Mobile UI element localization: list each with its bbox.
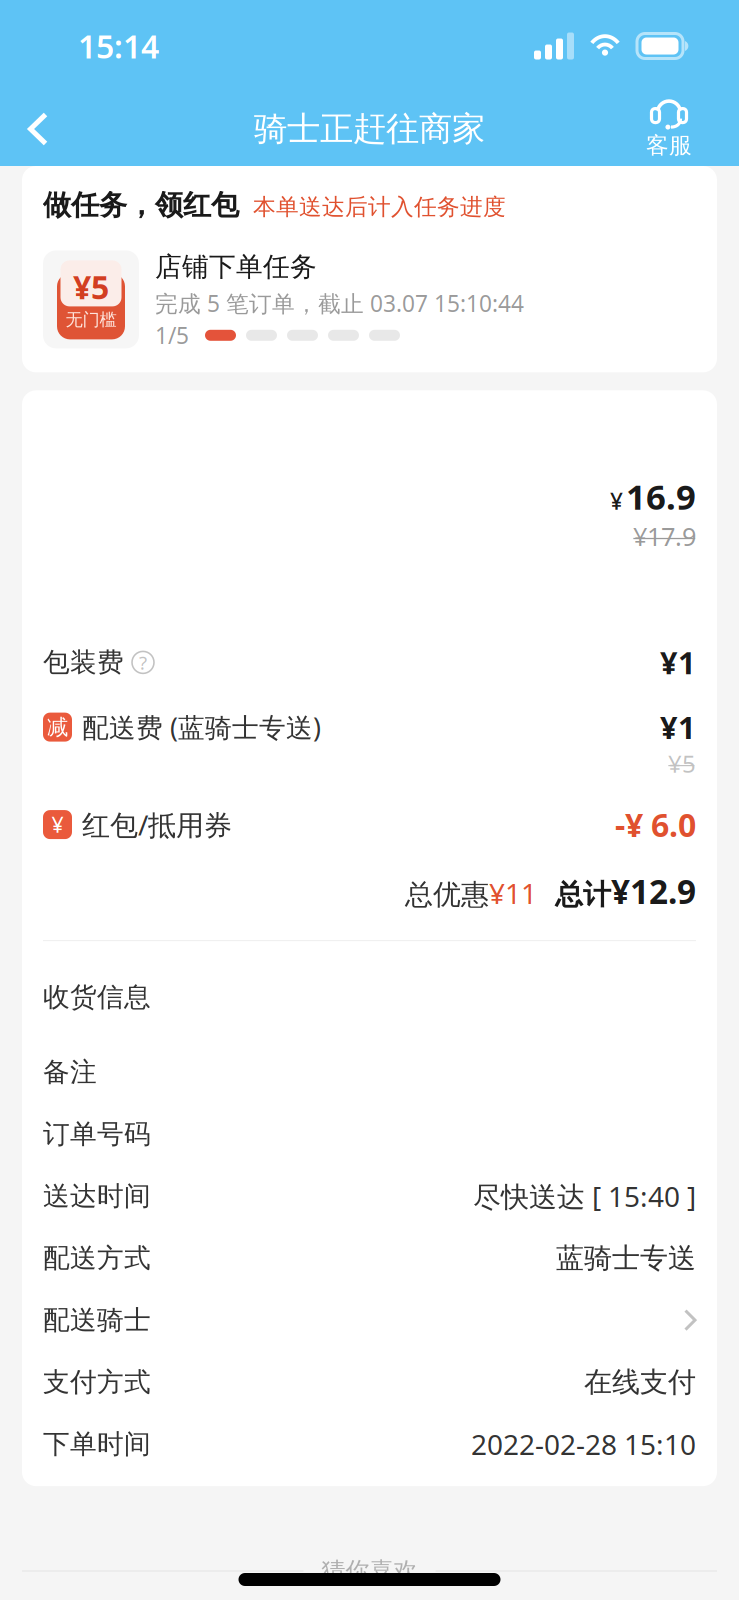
staticText: 16.9: [626, 473, 696, 519]
button[interactable]: 配送骑士: [22, 1289, 717, 1351]
staticText: ¥12.9: [611, 869, 696, 913]
staticText: ¥17.9: [633, 519, 696, 553]
staticText: 猜你喜欢: [321, 1556, 417, 1586]
staticText: ?: [139, 650, 147, 675]
staticText: 客服: [646, 132, 692, 159]
button[interactable]: 客服: [646, 92, 739, 166]
button[interactable]: 配送方式: [22, 1227, 717, 1289]
staticText: 订单号码: [43, 1118, 151, 1150]
staticText: 1/5: [155, 320, 189, 350]
staticText: ¥: [610, 486, 623, 516]
staticText: 总优惠: [405, 877, 489, 912]
staticText: 店铺下单任务: [155, 250, 317, 283]
staticText: 完成 5 笔订单，截止 03.07 15:10:44: [155, 288, 524, 318]
staticText: ¥11: [489, 874, 537, 912]
staticText: 本单送达后计入任务进度: [253, 193, 506, 221]
staticText: 在线支付: [584, 1365, 696, 1399]
button[interactable]: Back: [0, 92, 78, 166]
staticText: 备注: [43, 1056, 97, 1088]
staticText: 尽快送达 [ 15:40 ]: [473, 1177, 696, 1215]
staticText: ¥5: [668, 747, 696, 779]
button[interactable]: 收货信息: [22, 966, 717, 1028]
staticText: 2022-02-28 15:10: [471, 1425, 696, 1463]
staticText: ¥: [51, 810, 63, 839]
staticText: 红包/抵用券: [82, 806, 232, 843]
staticText: 包装费: [43, 646, 124, 679]
staticText: 蓝骑士专送: [556, 1241, 696, 1275]
staticText: ¥5: [73, 266, 109, 308]
staticText: 无门槛: [65, 309, 116, 330]
staticText: 15:14: [78, 25, 159, 67]
button[interactable]: 支付方式: [22, 1351, 717, 1413]
staticText: 配送方式: [43, 1242, 151, 1274]
staticText: 做任务，领红包: [43, 188, 239, 222]
staticText: 配送费 (蓝骑士专送): [82, 709, 321, 745]
staticText: ¥1: [660, 642, 696, 683]
staticText: 减: [47, 714, 68, 740]
button[interactable]: 送达时间: [22, 1165, 717, 1227]
button[interactable]: 备注: [22, 1041, 717, 1103]
staticText: 总计: [555, 877, 611, 912]
staticText: ¥1: [660, 707, 696, 747]
staticText: 下单时间: [43, 1428, 151, 1460]
staticText: 送达时间: [43, 1180, 151, 1212]
staticText: 收货信息: [43, 981, 151, 1013]
staticText: -¥ 6.0: [615, 803, 696, 846]
staticText: 骑士正赶往商家: [254, 108, 485, 149]
staticText: 配送骑士: [43, 1304, 151, 1336]
staticText: 支付方式: [43, 1366, 151, 1398]
button[interactable]: 订单号码: [22, 1103, 717, 1165]
button[interactable]: 下单时间: [22, 1413, 717, 1475]
